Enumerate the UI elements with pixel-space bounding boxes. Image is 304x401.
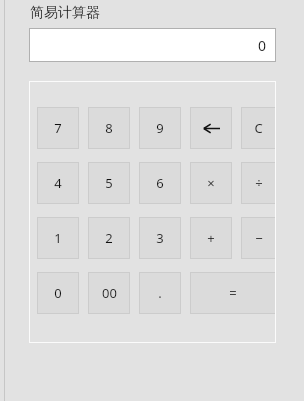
staticText: 9 <box>156 119 164 137</box>
staticText: 0 <box>258 36 267 55</box>
staticText: = <box>229 284 237 302</box>
button[interactable]: 3 <box>139 217 181 259</box>
button[interactable]: 5 <box>88 162 130 204</box>
button[interactable]: ÷ <box>241 162 276 204</box>
staticText: − <box>255 229 263 247</box>
button[interactable]: Backspace <box>190 107 232 149</box>
staticText: 5 <box>105 174 113 192</box>
staticText: × <box>207 174 215 192</box>
staticText: + <box>207 229 215 247</box>
button[interactable]: 7 <box>37 107 79 149</box>
button[interactable]: 9 <box>139 107 181 149</box>
staticText: 2 <box>105 229 113 247</box>
staticText: C <box>254 119 263 137</box>
button[interactable]: 6 <box>139 162 181 204</box>
staticText: 简易计算器 <box>30 4 100 22</box>
button[interactable]: 8 <box>88 107 130 149</box>
button[interactable]: 2 <box>88 217 130 259</box>
staticText: 7 <box>54 119 62 137</box>
button[interactable]: 1 <box>37 217 79 259</box>
staticText: 4 <box>54 174 62 192</box>
button[interactable]: . <box>139 272 181 314</box>
staticText: 8 <box>105 119 113 137</box>
button[interactable]: × <box>190 162 232 204</box>
staticText: 00 <box>102 284 117 302</box>
staticText: 0 <box>54 284 62 302</box>
button[interactable]: 0 <box>37 272 79 314</box>
button[interactable]: 0 <box>29 28 276 62</box>
button[interactable]: C <box>241 107 276 149</box>
button[interactable]: = <box>190 272 276 314</box>
button[interactable]: 4 <box>37 162 79 204</box>
button[interactable]: 00 <box>88 272 130 314</box>
button[interactable]: − <box>241 217 276 259</box>
staticText: 3 <box>156 229 164 247</box>
staticText: 1 <box>54 229 62 247</box>
staticText: 6 <box>156 174 164 192</box>
staticText: ÷ <box>255 174 263 192</box>
staticText: . <box>158 284 162 302</box>
button[interactable]: + <box>190 217 232 259</box>
